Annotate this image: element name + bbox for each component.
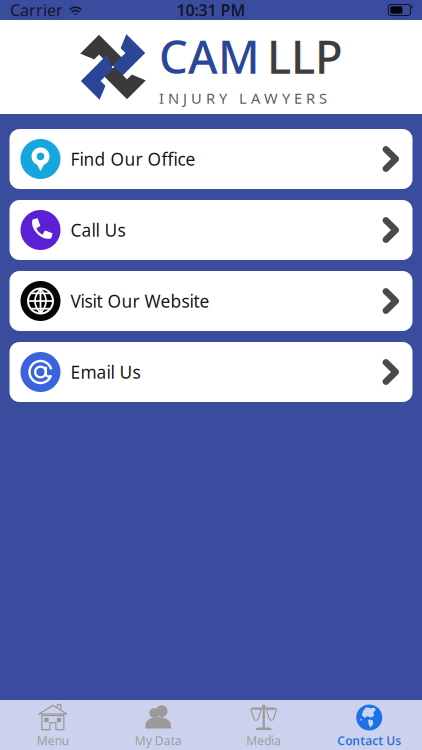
button[interactable]: My Data — [105, 700, 211, 750]
staticText: 10:31 PM — [176, 0, 245, 21]
button[interactable]: Menu — [0, 700, 105, 750]
staticText: My Data — [135, 732, 182, 748]
button[interactable]: Find Our Office — [9, 129, 412, 189]
button[interactable]: Contact Us — [316, 700, 422, 750]
button[interactable]: Visit Our Website — [9, 271, 412, 331]
button[interactable]: Call Us — [9, 200, 412, 260]
staticText: Find Our Office — [70, 147, 195, 170]
staticText: LLP — [267, 26, 343, 86]
staticText: I N J U R Y L A W Y E R S — [159, 88, 327, 108]
staticText: Media — [246, 732, 281, 748]
button[interactable]: Media — [211, 700, 316, 750]
staticText: Carrier — [10, 0, 63, 21]
staticText: CAM — [159, 26, 260, 86]
button[interactable]: Email Us — [9, 342, 412, 402]
staticText: Call Us — [70, 218, 125, 241]
staticText: Contact Us — [337, 732, 401, 748]
staticText: Visit Our Website — [70, 289, 209, 312]
staticText: Menu — [37, 732, 69, 748]
staticText: Email Us — [70, 360, 140, 383]
